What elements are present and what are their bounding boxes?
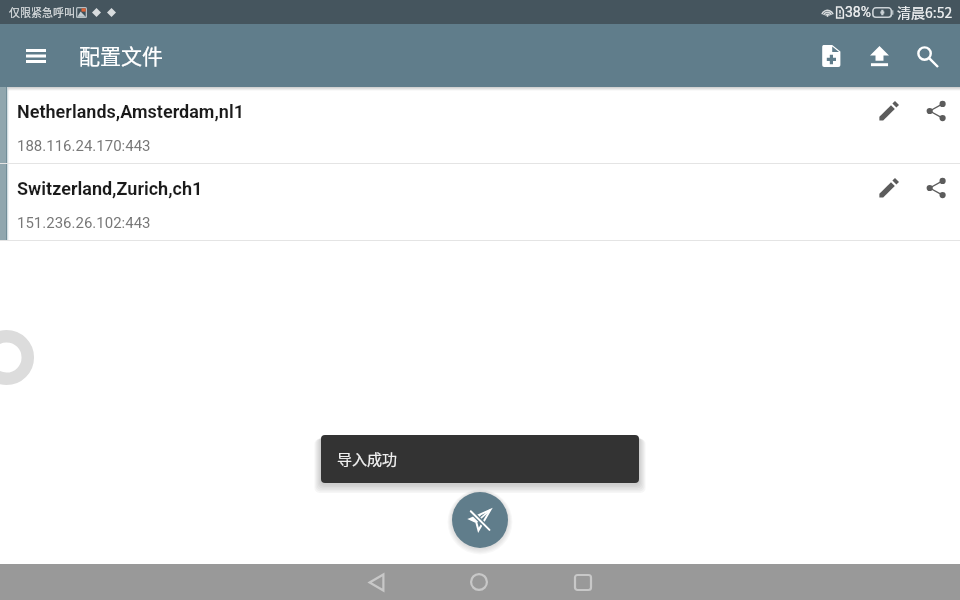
button[interactable]: Open navigation drawer [12,32,60,80]
button[interactable]: Disconnect VPN [452,492,508,548]
button[interactable]: Create profile [807,32,855,80]
button[interactable]: Switzerland,Zurich,ch1 [0,164,960,240]
button[interactable]: Share [912,164,960,211]
staticText: 188.116.24.170:443 [17,137,151,155]
staticText: 151.236.26.102:443 [17,214,151,232]
button[interactable]: Back [336,564,416,600]
button[interactable]: Edit [865,164,913,211]
button[interactable]: Home [439,564,519,600]
button[interactable]: Search [903,32,951,80]
button[interactable]: Edit [865,87,913,134]
staticText: Netherlands,Amsterdam,nl1 [17,101,245,122]
button[interactable]: Import profile [855,32,903,80]
staticText: 配置文件 [79,40,163,70]
staticText: 导入成功 [337,448,398,470]
button[interactable]: Share [912,87,960,134]
button[interactable]: Netherlands,Amsterdam,nl1 [0,87,960,163]
staticText: 38% [845,4,871,20]
staticText: 清晨6:52 [897,2,953,22]
staticText: 仅限紧急呼叫 [9,4,75,20]
staticText: Switzerland,Zurich,ch1 [17,178,203,199]
button[interactable]: Recent apps [543,564,623,600]
